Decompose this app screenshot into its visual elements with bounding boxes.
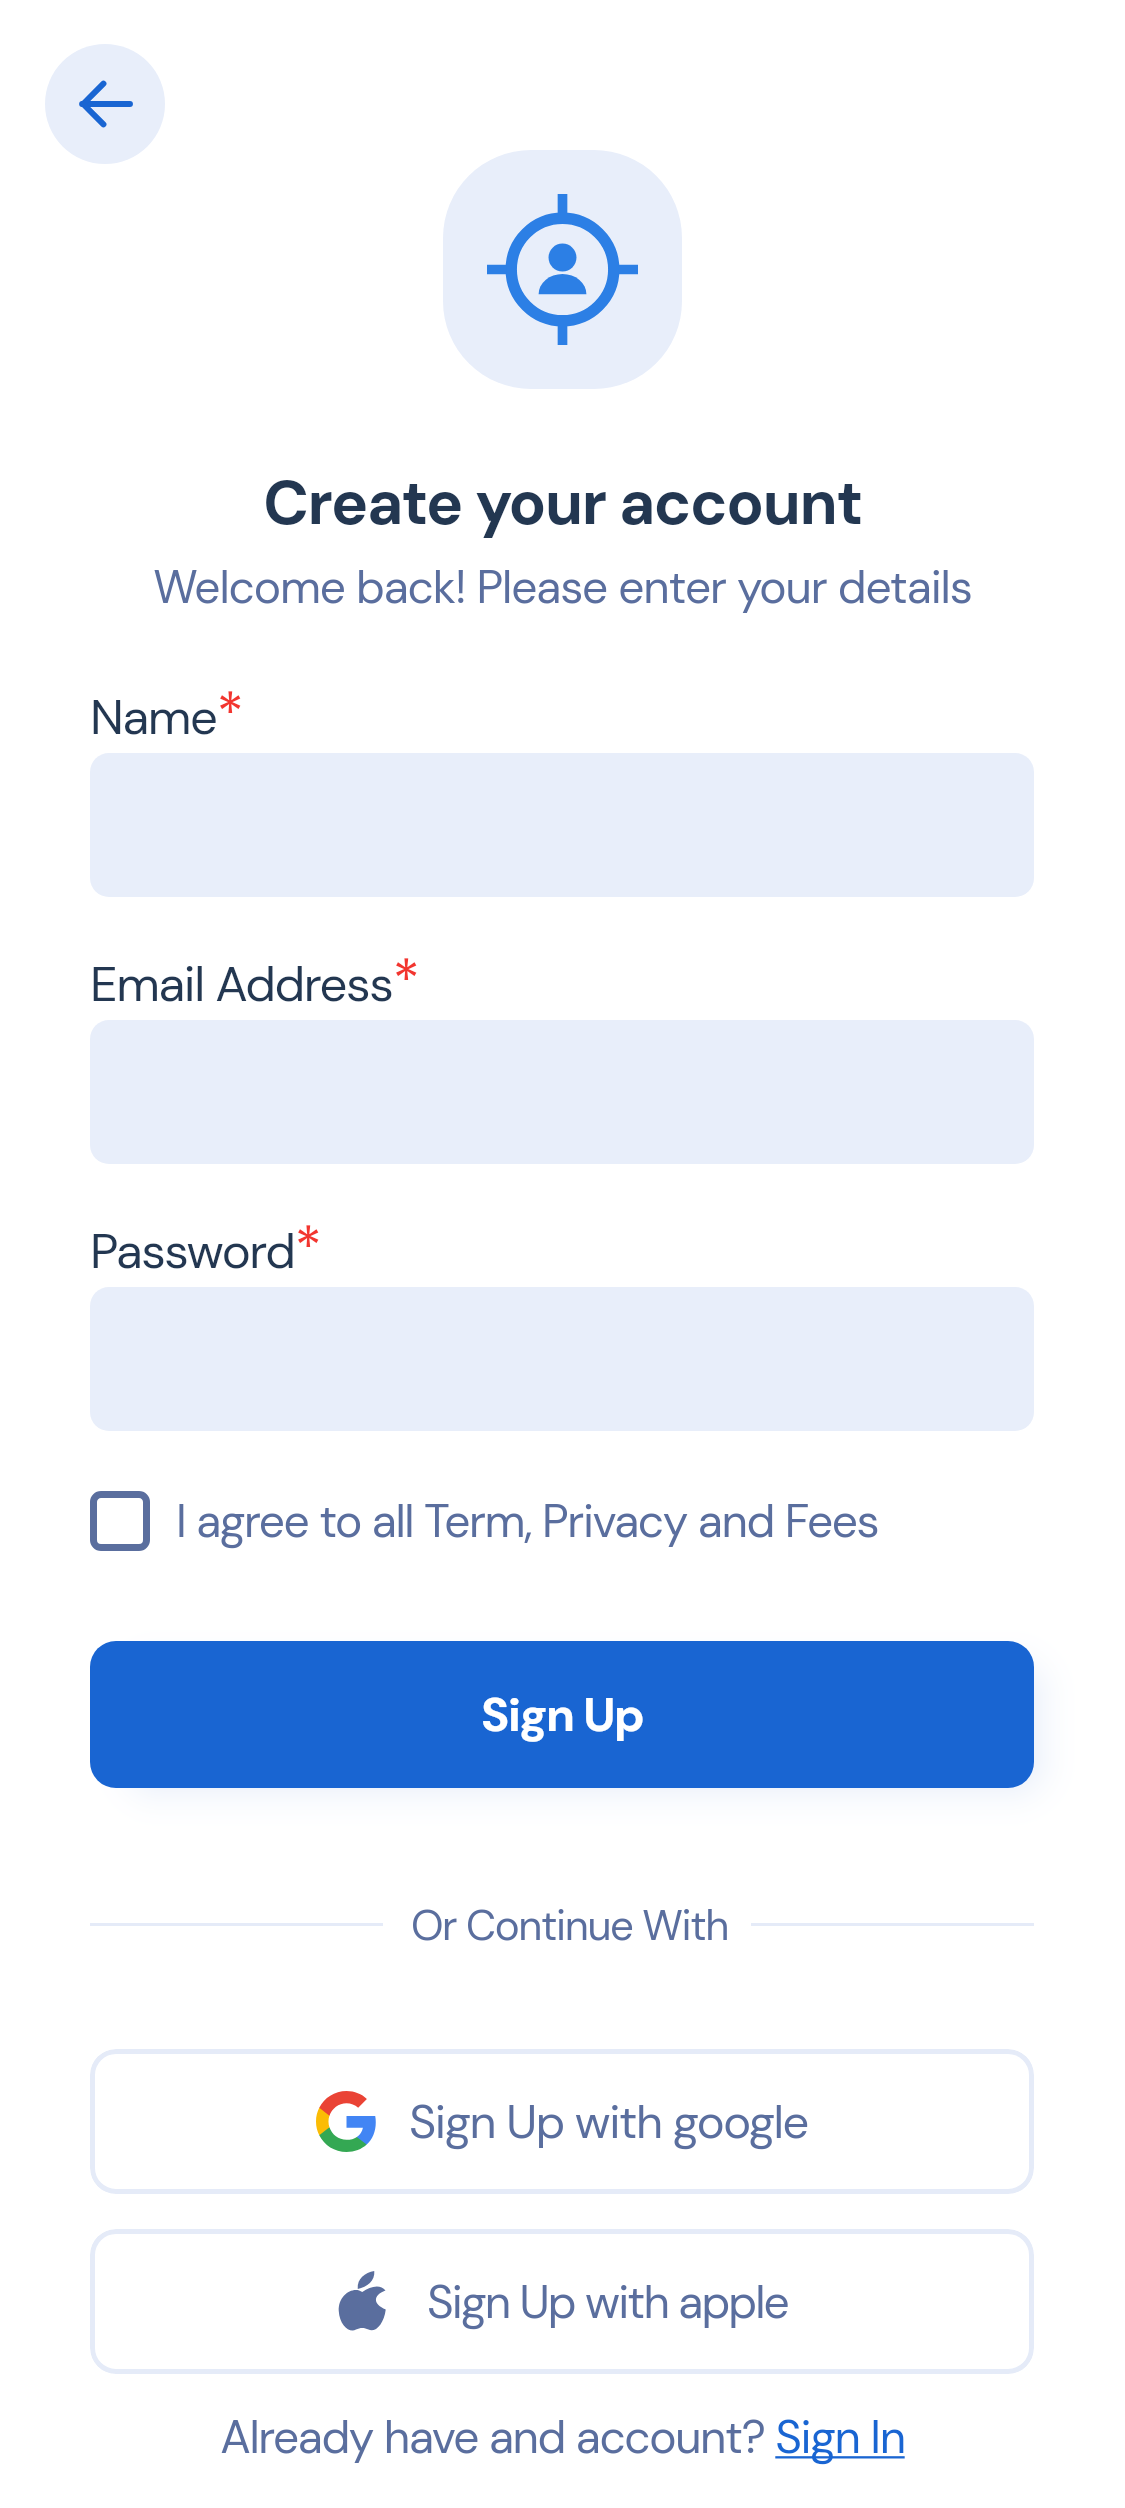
staticText: Welcome back! Please enter your details: [0, 557, 1125, 617]
button[interactable]: Sign Up: [90, 1641, 1034, 1788]
staticText: Already have and account? Sign In: [0, 2407, 1125, 2467]
button[interactable]: Back: [45, 44, 165, 164]
staticText: I agree to all Term, Privacy and Fees: [176, 1491, 879, 1551]
staticText: Sign Up: [481, 1684, 644, 1745]
staticText: Or Continue With: [7, 1898, 1125, 1953]
staticText: Create your account: [0, 462, 1125, 543]
staticText: Password*: [90, 1211, 321, 1285]
button[interactable]: Sign Up with google: [90, 2049, 1034, 2194]
staticText: Sign Up with apple: [427, 2272, 788, 2332]
button[interactable]: Sign Up with apple: [90, 2229, 1034, 2374]
staticText: Email Address*: [90, 944, 419, 1018]
button[interactable]: I agree to all Term, Privacy and Fees: [90, 1486, 879, 1556]
staticText: Sign Up with google: [409, 2091, 808, 2152]
staticText: Name*: [90, 677, 243, 751]
